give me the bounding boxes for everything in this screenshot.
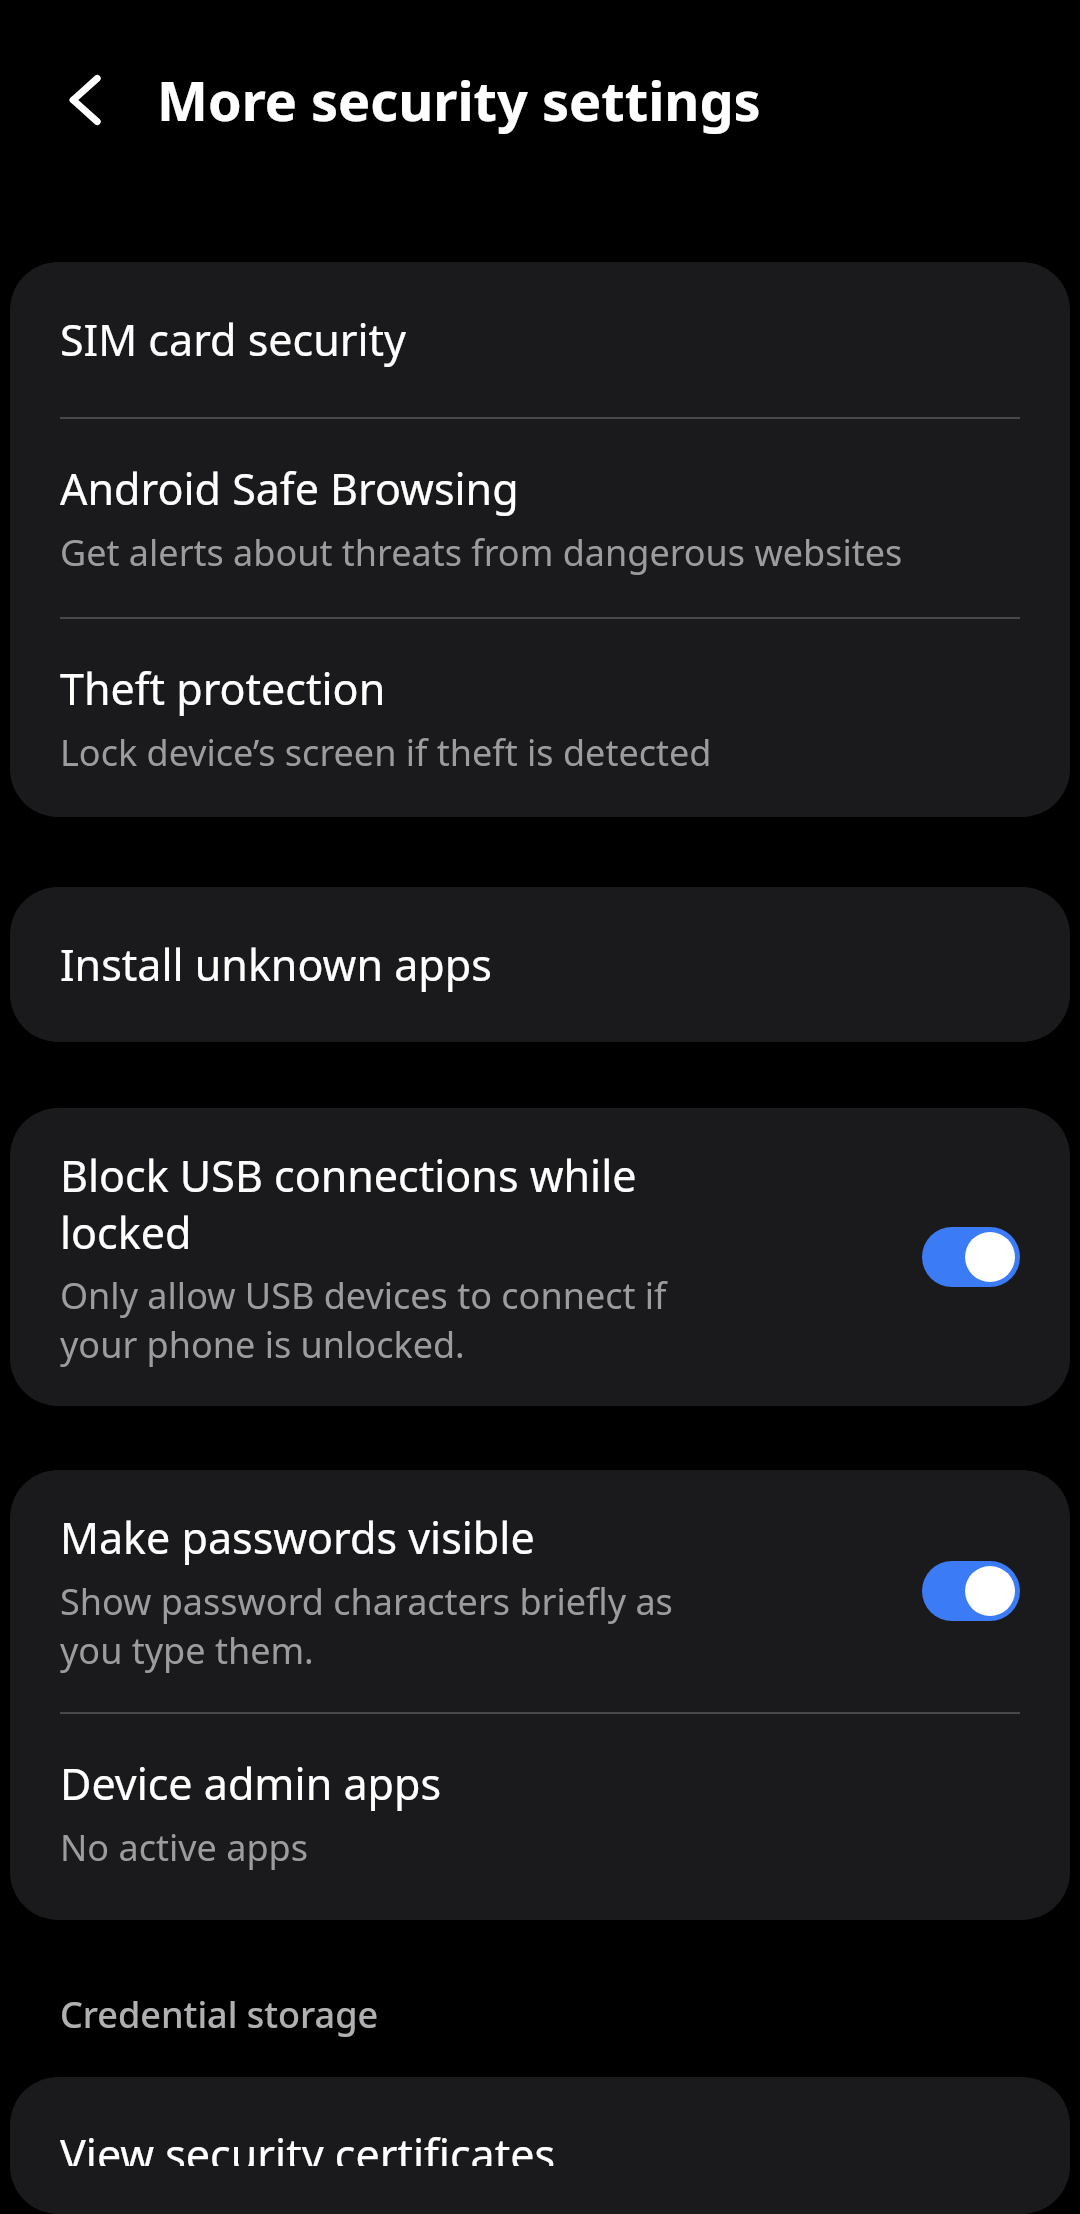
staticText: Make passwords visible <box>60 1508 717 1567</box>
staticText: Theft protection <box>60 659 386 718</box>
staticText: Show password characters briefly as you … <box>60 1577 717 1674</box>
button[interactable]: Android Safe Browsing <box>10 419 1070 617</box>
button[interactable]: Theft protection <box>10 619 1070 817</box>
staticText: Credential storage <box>60 1990 379 2039</box>
button[interactable]: Toggle <box>922 1561 1020 1621</box>
staticText: More security settings <box>157 63 761 137</box>
staticText: SIM card security <box>60 310 407 369</box>
staticText: Install unknown apps <box>60 935 492 994</box>
button[interactable]: Back <box>35 45 145 155</box>
button[interactable]: Toggle <box>922 1227 1020 1287</box>
staticText: Device admin apps <box>60 1754 442 1813</box>
staticText: Only allow USB devices to connect if you… <box>60 1271 717 1368</box>
button[interactable]: Block USB connections while locked <box>10 1108 1070 1406</box>
button[interactable]: Install unknown apps <box>10 887 1070 1042</box>
button[interactable]: SIM card security <box>10 262 1070 417</box>
staticText: No active apps <box>60 1823 308 1872</box>
staticText: Block USB connections while locked <box>60 1146 717 1261</box>
button[interactable]: Make passwords visible <box>10 1470 1070 1712</box>
staticText: Lock device’s screen if theft is detecte… <box>60 728 712 777</box>
button[interactable]: View security certificates <box>10 2077 1070 2214</box>
button[interactable]: Device admin apps <box>10 1714 1070 1920</box>
staticText: Get alerts about threats from dangerous … <box>60 528 903 577</box>
staticText: View security certificates <box>60 2125 556 2166</box>
staticText: Android Safe Browsing <box>60 459 519 518</box>
